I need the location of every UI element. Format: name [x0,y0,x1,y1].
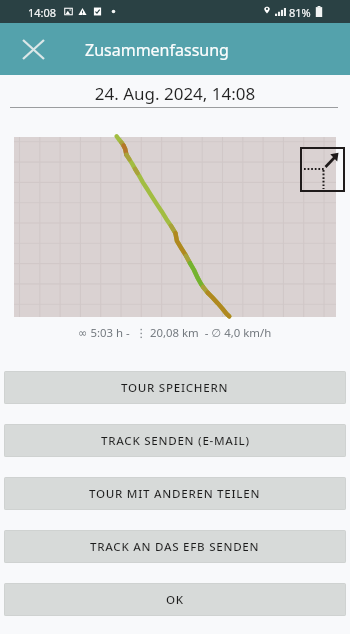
staticText: ∞ 5:03 h - ⋮ 20,08 km - ∅ 4,0 km/h [78,325,272,341]
staticText: TRACK AN DAS EFB SENDEN [90,539,260,555]
button[interactable]: TRACK AN DAS EFB SENDEN [4,530,346,563]
staticText: OK [166,592,184,608]
button[interactable]: Close [13,23,53,75]
button[interactable]: TOUR SPEICHERN [4,371,346,404]
button[interactable]: Expand map [300,147,345,192]
button[interactable]: OK [4,583,346,616]
staticText: TOUR SPEICHERN [121,380,229,396]
staticText: TRACK SENDEN (E-MAIL) [101,433,250,449]
staticText: Zusammenfassung [85,39,229,61]
staticText: 24. Aug. 2024, 14:08 [0,82,350,105]
staticText: TOUR MIT ANDEREN TEILEN [89,486,261,502]
staticText: 81% [289,5,311,20]
button[interactable]: TRACK SENDEN (E-MAIL) [4,424,346,457]
button[interactable]: TOUR MIT ANDEREN TEILEN [4,477,346,510]
staticText: 14:08 [28,5,57,20]
